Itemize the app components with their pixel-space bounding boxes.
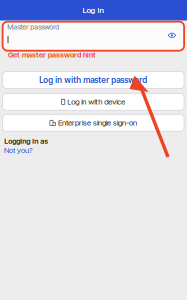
button[interactable]: Log in with master password [3, 71, 184, 88]
button[interactable]: Not you? [4, 146, 44, 154]
staticText: Log in with master password [39, 75, 147, 85]
staticText: Enterprise single sign-on [58, 118, 137, 127]
staticText: Log in with device [67, 97, 125, 106]
button[interactable]: Get master password hint [8, 50, 108, 59]
button[interactable]: Log in with device [3, 93, 184, 110]
staticText: Logging in as [4, 137, 48, 146]
staticText: Get master password hint [8, 50, 96, 59]
staticText: Master password [7, 22, 59, 31]
button[interactable]: Toggle password visibility [164, 27, 180, 43]
staticText: Log in [82, 5, 104, 15]
button[interactable]: Enterprise single sign-on [3, 114, 184, 131]
staticText: Not you? [4, 146, 32, 155]
